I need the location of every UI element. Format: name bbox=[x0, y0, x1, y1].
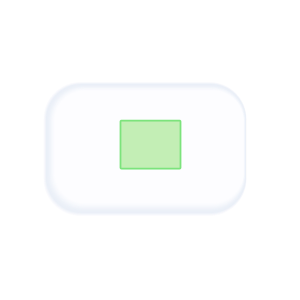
button[interactable]: Card bbox=[43, 82, 246, 216]
button[interactable]: Selection bbox=[120, 121, 180, 169]
